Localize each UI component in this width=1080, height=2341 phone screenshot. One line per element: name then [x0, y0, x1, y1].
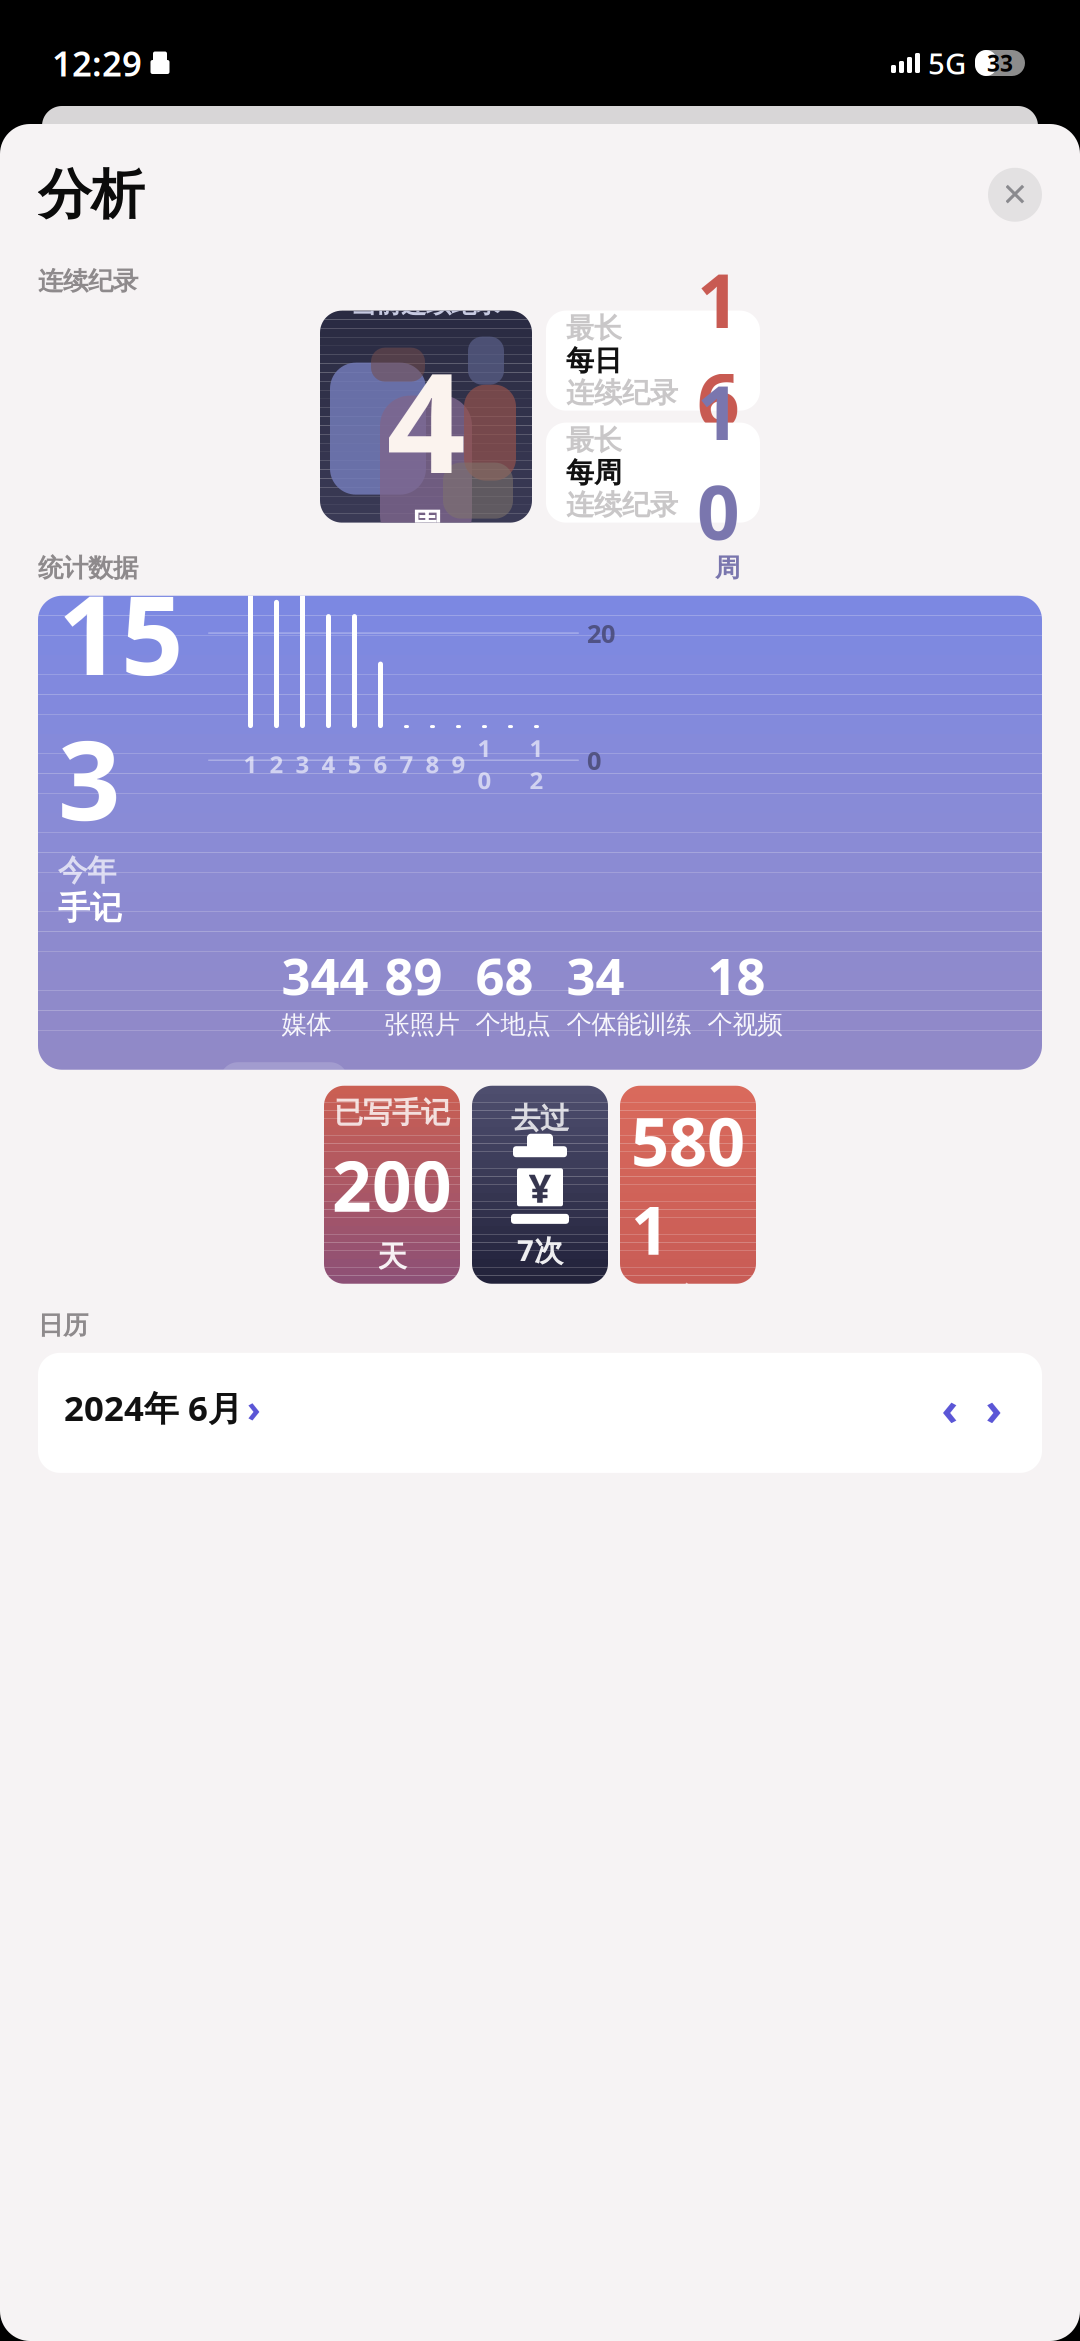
staticText: 周	[715, 552, 740, 583]
button[interactable]: 2024年	[220, 1062, 348, 1117]
staticText: 张照片	[384, 1009, 459, 1040]
staticText: 9	[451, 748, 465, 780]
staticText: 344	[281, 942, 368, 1009]
button[interactable]: 关闭	[988, 168, 1042, 222]
staticText: 今年	[58, 852, 116, 888]
staticText: ¥	[528, 1161, 551, 1214]
staticText: 16	[697, 250, 740, 448]
staticText: 最长	[566, 311, 622, 345]
staticText: 天	[377, 1239, 406, 1275]
staticText: 7	[399, 748, 413, 780]
staticText: 连续纪录	[566, 376, 678, 410]
staticText: 10	[697, 362, 740, 560]
staticText: 18	[707, 942, 765, 1009]
staticText: 8	[425, 748, 439, 780]
staticText: ‹	[941, 1377, 958, 1438]
staticText: 2024年	[238, 1071, 330, 1108]
staticText: 连续纪录	[566, 488, 678, 522]
button[interactable]: 当前连续纪录	[320, 311, 532, 523]
staticText: 4	[321, 748, 335, 780]
button[interactable]: 已写	[620, 1086, 756, 1284]
staticText: 去过	[511, 1100, 569, 1136]
staticText: 个地点	[475, 1009, 550, 1040]
staticText: 12	[529, 732, 543, 796]
button[interactable]: 最长	[546, 311, 760, 411]
staticText: 已写	[659, 1052, 717, 1088]
staticText: 个体能训练	[566, 1009, 691, 1040]
staticText: 153	[58, 560, 184, 850]
staticText: 5	[347, 748, 361, 780]
staticText: ›	[247, 1383, 261, 1432]
staticText: 7次	[517, 1230, 563, 1269]
staticText: 当前连续纪录	[351, 288, 501, 319]
staticText: 6	[373, 748, 387, 780]
staticText: ✕	[1001, 177, 1028, 213]
staticText: 1	[243, 748, 257, 780]
staticText: 已写手记	[334, 1095, 450, 1131]
staticText: 字	[673, 1281, 702, 1317]
staticText: 媒体	[281, 1009, 331, 1040]
staticText: 统计数据	[38, 553, 138, 584]
staticText: 89	[384, 942, 442, 1009]
staticText: 周	[410, 506, 442, 545]
staticText: 日历	[38, 1310, 88, 1341]
staticText: 20	[587, 616, 615, 650]
staticText: 5G	[928, 43, 966, 82]
staticText: 分析	[38, 162, 144, 227]
staticText: 4	[386, 327, 465, 512]
staticText: 连续纪录	[38, 265, 138, 297]
staticText: 2023年	[370, 1071, 462, 1108]
staticText: 0	[587, 743, 601, 777]
staticText: 手记	[58, 888, 122, 928]
button[interactable]: 最长	[546, 423, 760, 523]
staticText: 33	[987, 48, 1013, 78]
staticText: 3	[295, 748, 309, 780]
staticText: 34	[566, 942, 624, 1009]
button[interactable]: 上个月	[928, 1386, 972, 1430]
button[interactable]: 已写手记	[324, 1086, 460, 1284]
staticText: 2	[269, 748, 283, 780]
staticText: 2024年 6月	[64, 1385, 243, 1431]
staticText: 每周	[566, 455, 622, 490]
staticText: 5801	[631, 1096, 745, 1273]
staticText: 最长	[566, 423, 622, 457]
staticText: ›	[985, 1377, 1002, 1438]
staticText: 68	[475, 942, 533, 1009]
staticText: 每日	[566, 343, 622, 378]
button[interactable]: 下个月	[972, 1386, 1016, 1430]
staticText: 200	[332, 1139, 452, 1231]
staticText: 10	[477, 732, 491, 796]
button[interactable]: 全部时间	[68, 1064, 216, 1116]
staticText: 个视频	[707, 1009, 782, 1040]
button[interactable]: 2024年 6月	[64, 1383, 261, 1432]
staticText: 12:29	[52, 40, 142, 86]
button[interactable]: 去过	[472, 1086, 608, 1284]
staticText: 40	[587, 489, 615, 523]
button[interactable]: 2023年	[352, 1062, 480, 1117]
